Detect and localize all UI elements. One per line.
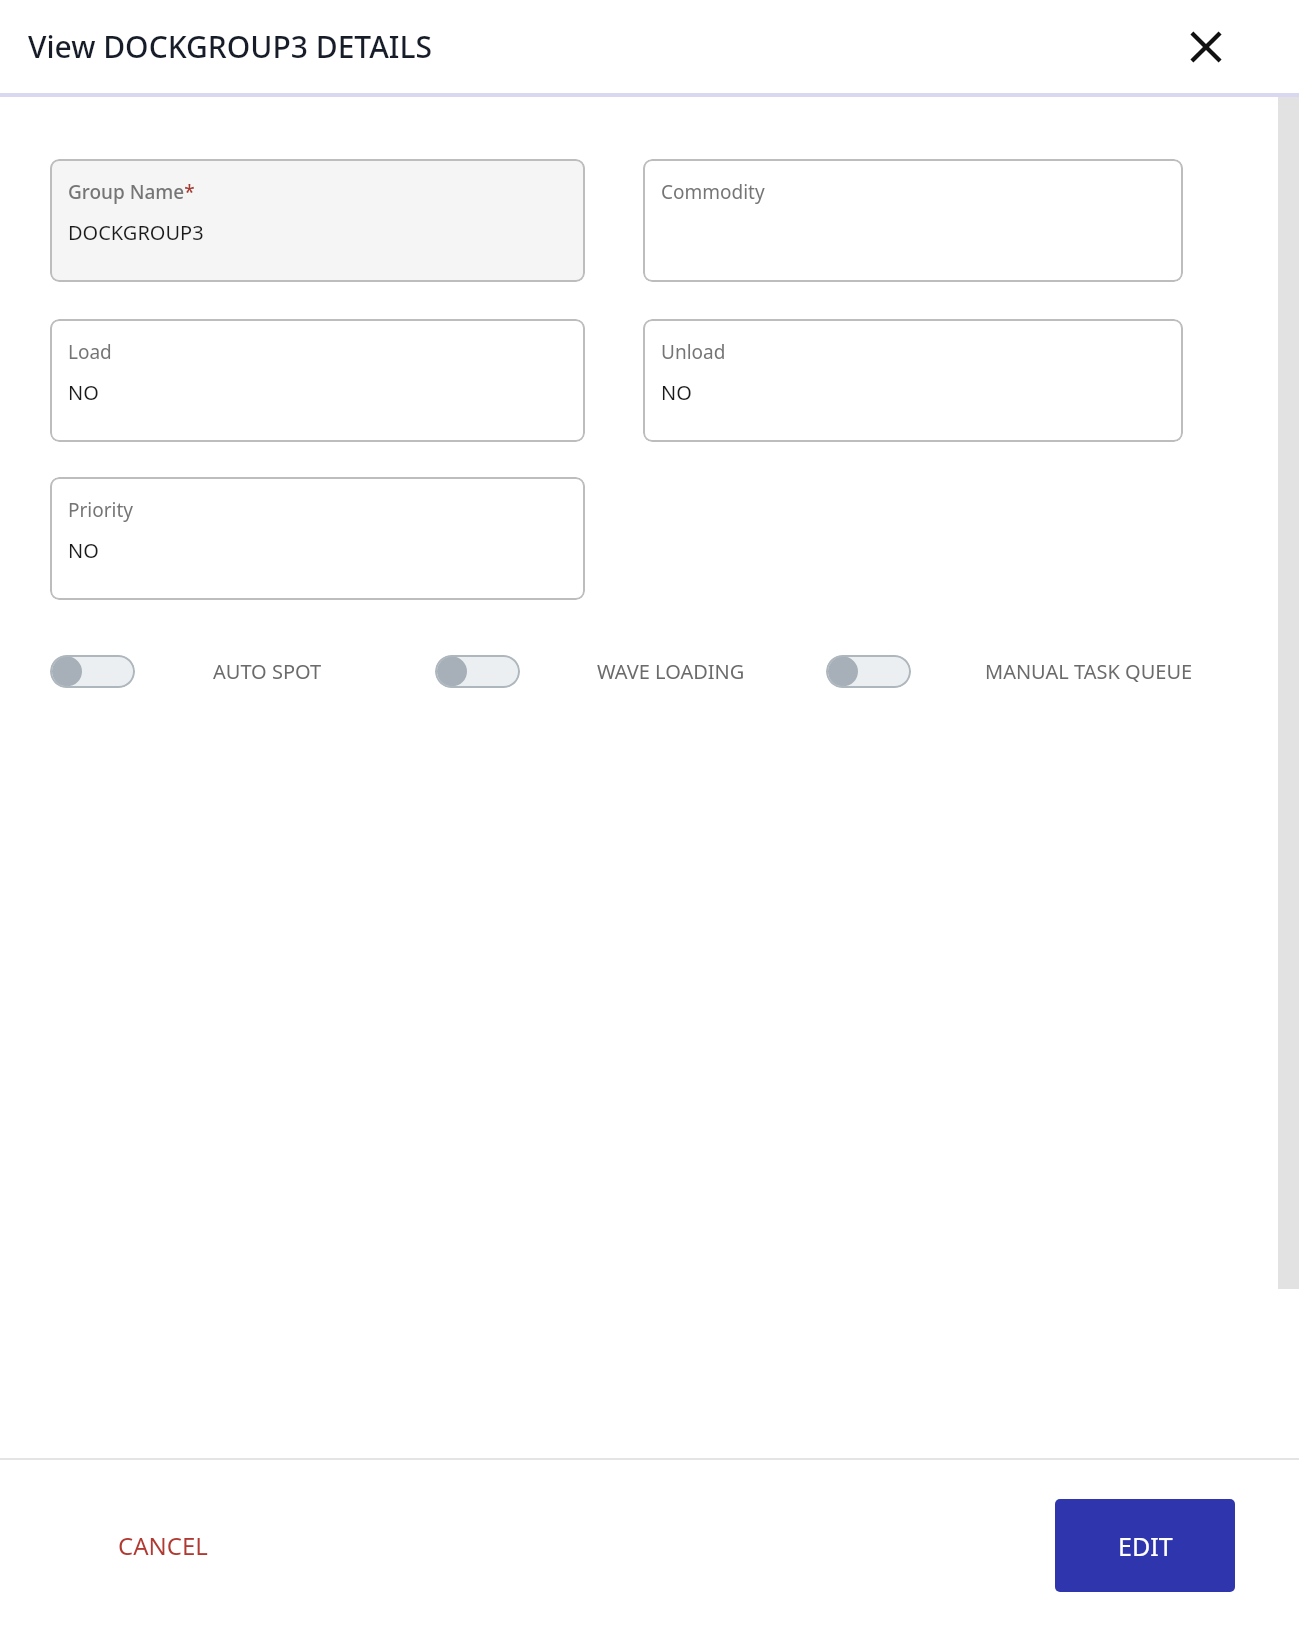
staticText: NO [661, 379, 692, 406]
staticText: EDIT [1118, 1529, 1173, 1563]
button[interactable]: WAVE LOADING [435, 655, 520, 688]
button[interactable]: Unload [643, 319, 1183, 442]
staticText: Priority [68, 497, 134, 523]
button[interactable]: Group Name* [50, 159, 585, 282]
staticText: AUTO SPOT [213, 658, 322, 685]
staticText: NO [68, 537, 99, 564]
staticText: Load [68, 339, 112, 365]
staticText: MANUAL TASK QUEUE [985, 658, 1193, 685]
staticText: WAVE LOADING [597, 658, 745, 685]
button[interactable]: MANUAL TASK QUEUE [826, 655, 911, 688]
staticText: View DOCKGROUP3 DETAILS [28, 26, 432, 67]
button[interactable]: Load [50, 319, 585, 442]
staticText: CANCEL [118, 1529, 208, 1562]
button[interactable]: EDIT [1055, 1499, 1235, 1592]
staticText: Unload [661, 339, 726, 365]
staticText: DOCKGROUP3 [68, 219, 204, 246]
staticText: Commodity [661, 179, 765, 205]
staticText: NO [68, 379, 99, 406]
button[interactable]: Priority [50, 477, 585, 600]
button[interactable]: CANCEL [96, 1513, 230, 1578]
button[interactable]: AUTO SPOT [50, 655, 135, 688]
button[interactable]: Commodity [643, 159, 1183, 282]
staticText: Group Name* [68, 179, 195, 205]
button[interactable]: Close [1183, 24, 1229, 70]
